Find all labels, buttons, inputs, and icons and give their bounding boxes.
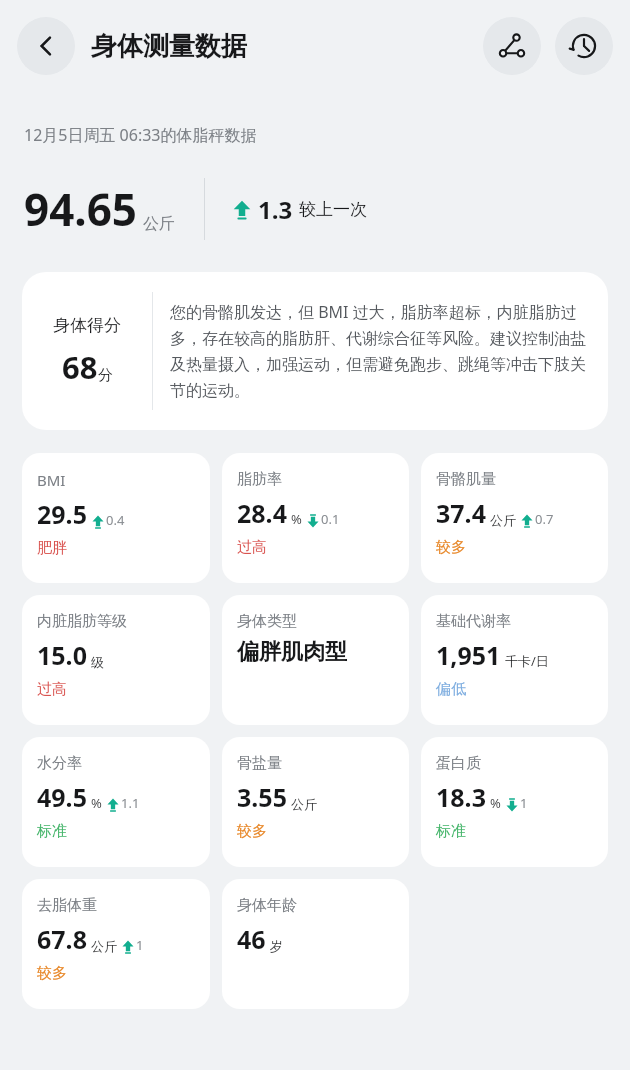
button[interactable]: 水分率 bbox=[22, 737, 210, 867]
staticText: 偏低 bbox=[436, 680, 466, 699]
staticText: % bbox=[91, 794, 102, 812]
staticText: 水分率 bbox=[37, 754, 82, 773]
button[interactable]: 骨骼肌量 bbox=[421, 453, 608, 583]
staticText: 公斤 bbox=[490, 512, 516, 528]
staticText: 3.55 bbox=[237, 780, 287, 814]
staticText: 67.8 bbox=[37, 922, 87, 956]
staticText: 级 bbox=[91, 654, 104, 670]
staticText: 公斤 bbox=[143, 214, 175, 234]
staticText: BMI bbox=[37, 470, 66, 490]
staticText: 标准 bbox=[37, 822, 67, 841]
button[interactable]: History bbox=[555, 17, 613, 75]
staticText: 较多 bbox=[237, 822, 267, 841]
staticText: 1 bbox=[520, 794, 528, 812]
staticText: 肥胖 bbox=[37, 539, 67, 558]
staticText: 岁 bbox=[270, 938, 283, 954]
button[interactable]: 脂肪率 bbox=[222, 453, 409, 583]
staticText: 28.4 bbox=[237, 496, 287, 530]
staticText: 标准 bbox=[436, 822, 466, 841]
button[interactable]: 身体年龄 bbox=[222, 879, 409, 1009]
staticText: 较上一次 bbox=[299, 199, 367, 220]
staticText: 公斤 bbox=[91, 938, 117, 954]
staticText: 去脂体重 bbox=[37, 896, 97, 915]
staticText: 偏胖肌肉型 bbox=[237, 638, 347, 666]
staticText: 1,951 bbox=[436, 638, 501, 672]
staticText: 骨骼肌量 bbox=[436, 470, 496, 489]
staticText: 分 bbox=[98, 366, 113, 385]
staticText: 94.65 bbox=[24, 179, 138, 239]
button[interactable]: 骨盐量 bbox=[222, 737, 409, 867]
staticText: 46 bbox=[237, 922, 266, 956]
staticText: 骨盐量 bbox=[237, 754, 282, 773]
staticText: 12月5日周五 06:33的体脂秤数据 bbox=[24, 124, 257, 146]
staticText: 0.1 bbox=[321, 510, 340, 528]
button[interactable]: 基础代谢率 bbox=[421, 595, 608, 725]
button[interactable]: Back bbox=[17, 17, 75, 75]
button[interactable]: 身体类型 bbox=[222, 595, 409, 725]
staticText: 37.4 bbox=[436, 496, 486, 530]
staticText: 68 bbox=[62, 346, 98, 388]
staticText: 29.5 bbox=[37, 497, 87, 531]
staticText: 15.0 bbox=[37, 638, 87, 672]
staticText: 较多 bbox=[436, 538, 466, 557]
button[interactable]: 内脏脂肪等级 bbox=[22, 595, 210, 725]
staticText: 过高 bbox=[37, 680, 67, 699]
staticText: 公斤 bbox=[291, 796, 317, 812]
staticText: 千卡/日 bbox=[505, 652, 549, 670]
staticText: 您的骨骼肌发达，但 BMI 过大，脂肪率超标，内脏脂肪过多，存在较高的脂肪肝、代… bbox=[170, 301, 594, 401]
staticText: % bbox=[291, 510, 302, 528]
staticText: 1.1 bbox=[121, 794, 140, 812]
button[interactable]: 蛋白质 bbox=[421, 737, 608, 867]
staticText: 0.4 bbox=[106, 511, 125, 529]
staticText: 身体测量数据 bbox=[91, 30, 247, 63]
staticText: 身体类型 bbox=[237, 612, 297, 631]
button[interactable]: 去脂体重 bbox=[22, 879, 210, 1009]
staticText: 0.7 bbox=[535, 510, 554, 528]
staticText: % bbox=[490, 794, 501, 812]
staticText: 身体得分 bbox=[53, 315, 121, 336]
staticText: 身体年龄 bbox=[237, 896, 297, 915]
staticText: 18.3 bbox=[436, 780, 486, 814]
staticText: 1.3 bbox=[258, 193, 293, 226]
staticText: 49.5 bbox=[37, 780, 87, 814]
staticText: 内脏脂肪等级 bbox=[37, 612, 127, 631]
staticText: 基础代谢率 bbox=[436, 612, 511, 631]
button[interactable]: 身体得分 bbox=[22, 272, 608, 430]
staticText: 较多 bbox=[37, 964, 67, 983]
staticText: 1 bbox=[136, 936, 144, 954]
button[interactable]: BMI bbox=[22, 453, 210, 583]
staticText: 脂肪率 bbox=[237, 470, 282, 489]
staticText: 蛋白质 bbox=[436, 754, 481, 773]
staticText: 过高 bbox=[237, 538, 267, 557]
button[interactable]: Share bbox=[483, 17, 541, 75]
